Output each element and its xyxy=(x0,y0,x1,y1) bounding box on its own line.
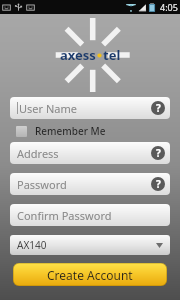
staticText: axess xyxy=(60,46,96,64)
button[interactable]: Help for Password xyxy=(151,177,165,191)
button[interactable]: Create Account xyxy=(13,263,167,286)
staticText: Password xyxy=(17,177,67,192)
staticText: 4:05 xyxy=(160,1,178,13)
staticText: Address xyxy=(17,146,59,161)
button[interactable]: Address xyxy=(10,142,170,164)
staticText: ? xyxy=(156,101,161,115)
button[interactable]: AX140 xyxy=(10,235,170,255)
staticText: Create Account xyxy=(47,267,133,283)
button[interactable]: Help for User Name xyxy=(151,101,165,115)
staticText: tel xyxy=(103,46,121,64)
button[interactable]: Password xyxy=(10,173,170,195)
button[interactable]: Remember Me xyxy=(16,123,180,139)
staticText: User Name xyxy=(19,101,77,116)
staticText: AX140 xyxy=(17,238,47,252)
button[interactable]: User Name xyxy=(10,97,170,119)
staticText: Confirm Password xyxy=(17,208,112,223)
staticText: ? xyxy=(156,146,161,160)
button[interactable]: Confirm Password xyxy=(10,204,170,226)
button[interactable]: Help for Address xyxy=(151,146,165,160)
staticText: ? xyxy=(156,177,161,191)
staticText: Remember Me xyxy=(35,124,106,138)
